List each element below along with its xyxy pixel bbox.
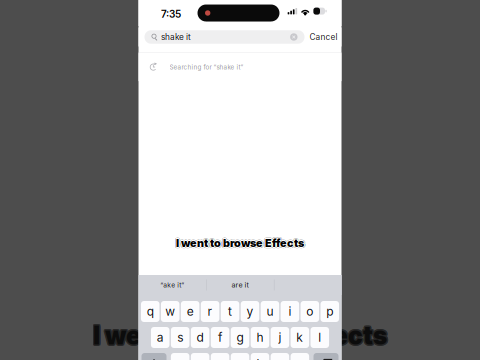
staticText: I went to browse Effects — [176, 236, 304, 249]
button[interactable]: Cancel — [309, 30, 343, 44]
button[interactable]: w — [161, 301, 179, 322]
staticText: Searching for “shake it” — [169, 63, 243, 71]
staticText: e — [187, 304, 194, 319]
button[interactable]: d — [191, 327, 209, 348]
button[interactable]: c — [211, 353, 229, 360]
button[interactable]: b — [251, 353, 269, 360]
staticText: I went to browse Effects — [94, 322, 388, 351]
button[interactable]: Delete — [313, 353, 338, 360]
staticText: I went to browse Effects — [176, 237, 304, 250]
staticText: I went to browse Effects — [176, 236, 304, 249]
staticText: I went to browse Effects — [93, 320, 387, 349]
staticText: I went to browse Effects — [176, 237, 304, 250]
staticText: I went to browse Effects — [175, 236, 303, 249]
staticText: I went to browse Effects — [175, 235, 303, 248]
staticText: f — [218, 330, 222, 345]
staticText: I went to browse Effects — [92, 321, 386, 351]
button[interactable]: t — [221, 301, 239, 322]
staticText: I went to browse Effects — [93, 321, 387, 350]
button[interactable]: i — [281, 301, 299, 322]
staticText: I went to browse Effects — [93, 320, 387, 350]
staticText: I went to browse Effects — [93, 321, 387, 351]
button[interactable]: h — [251, 327, 269, 348]
button[interactable]: m — [291, 353, 309, 360]
staticText: I went to browse Effects — [93, 322, 387, 352]
staticText: I went to browse Effects — [176, 236, 304, 249]
button[interactable]: u — [261, 301, 279, 322]
staticText: I went to browse Effects — [177, 236, 305, 250]
staticText: shake it — [161, 32, 191, 42]
button[interactable]: q — [141, 301, 159, 322]
button[interactable]: Searching for “shake it” — [138, 53, 341, 81]
staticText: I went to browse Effects — [175, 236, 303, 250]
staticText: p — [326, 304, 333, 319]
staticText: t — [228, 304, 232, 319]
staticText: I went to browse Effects — [92, 321, 386, 350]
staticText: I went to browse Effects — [176, 237, 304, 250]
staticText: I went to browse Effects — [176, 237, 304, 250]
staticText: k — [296, 330, 303, 345]
button[interactable]: y — [241, 301, 259, 322]
button[interactable]: e — [181, 301, 199, 322]
button[interactable]: j — [271, 327, 289, 348]
button[interactable]: f — [211, 327, 229, 348]
staticText: I went to browse Effects — [176, 236, 304, 250]
staticText: I went to browse Effects — [176, 236, 304, 249]
button[interactable]: r — [201, 301, 219, 322]
button[interactable]: g — [231, 327, 249, 348]
staticText: I went to browse Effects — [93, 322, 387, 351]
staticText: I went to browse Effects — [93, 320, 387, 350]
button[interactable]: l — [310, 327, 329, 348]
staticText: h — [256, 330, 263, 345]
staticText: I went to browse Effects — [176, 238, 304, 251]
button[interactable]: “ake it” — [138, 275, 206, 295]
staticText: I went to browse Effects — [94, 321, 388, 350]
staticText: I went to browse Effects — [94, 319, 388, 349]
staticText: I went to browse Effects — [92, 319, 386, 349]
staticText: I went to browse Effects — [92, 320, 386, 350]
staticText: I went to browse Effects — [93, 321, 387, 351]
staticText: d — [197, 330, 204, 345]
staticText: “ake it” — [160, 281, 184, 289]
staticText: I went to browse Effects — [177, 235, 305, 248]
staticText: I went to browse Effects — [175, 237, 303, 251]
staticText: I went to browse Effects — [91, 321, 385, 350]
staticText: I went to browse Effects — [175, 236, 303, 250]
staticText: I went to browse Effects — [177, 237, 305, 251]
staticText: I went to browse Effects — [176, 235, 304, 248]
button[interactable]: are it — [206, 275, 274, 295]
staticText: I went to browse Effects — [93, 321, 387, 350]
button[interactable]: x — [191, 353, 209, 360]
staticText: y — [246, 304, 253, 319]
button[interactable]: a — [151, 327, 169, 348]
button[interactable]: shake it — [144, 30, 304, 44]
staticText: j — [278, 330, 281, 345]
staticText: u — [266, 304, 273, 319]
button[interactable]: o — [300, 301, 319, 322]
button[interactable]: Shift — [141, 353, 166, 360]
button[interactable]: v — [231, 353, 249, 360]
button[interactable]: k — [291, 327, 309, 348]
staticText: l — [318, 330, 321, 345]
staticText: s — [177, 330, 183, 345]
staticText: I went to browse Effects — [94, 321, 388, 350]
staticText: I went to browse Effects — [177, 237, 305, 250]
staticText: I went to browse Effects — [94, 320, 388, 350]
staticText: I went to browse Effects — [177, 236, 305, 249]
staticText: I went to browse Effects — [175, 237, 303, 250]
staticText: I went to browse Effects — [92, 321, 386, 350]
button[interactable]: n — [271, 353, 289, 360]
button[interactable]: p — [320, 301, 339, 322]
staticText: I went to browse Effects — [93, 319, 387, 349]
button[interactable]: z — [171, 353, 189, 360]
staticText: o — [306, 304, 313, 319]
button[interactable]: s — [171, 327, 189, 348]
staticText: I went to browse Effects — [177, 236, 305, 250]
